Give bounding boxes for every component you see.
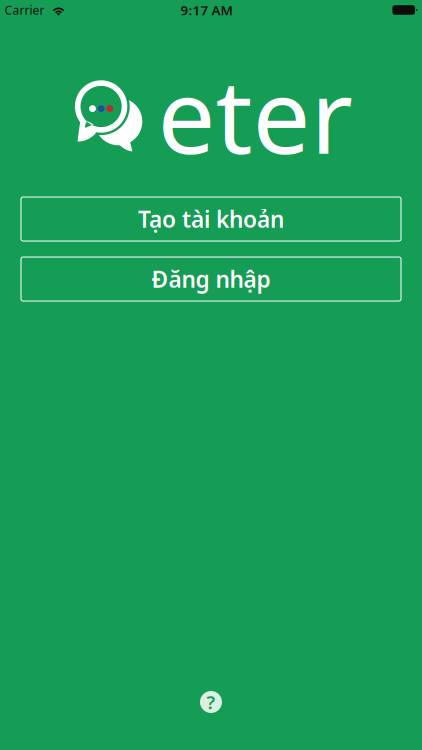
- staticText: Đăng nhập: [151, 264, 270, 294]
- button[interactable]: Tạo tài khoản: [21, 197, 401, 241]
- staticText: Carrier: [4, 2, 44, 18]
- staticText: ?: [206, 690, 215, 714]
- staticText: 9:17 AM: [180, 1, 232, 19]
- staticText: eter: [157, 46, 352, 182]
- button[interactable]: Đăng nhập: [21, 257, 401, 301]
- button[interactable]: Help: [200, 691, 222, 713]
- staticText: Tạo tài khoản: [138, 204, 284, 234]
